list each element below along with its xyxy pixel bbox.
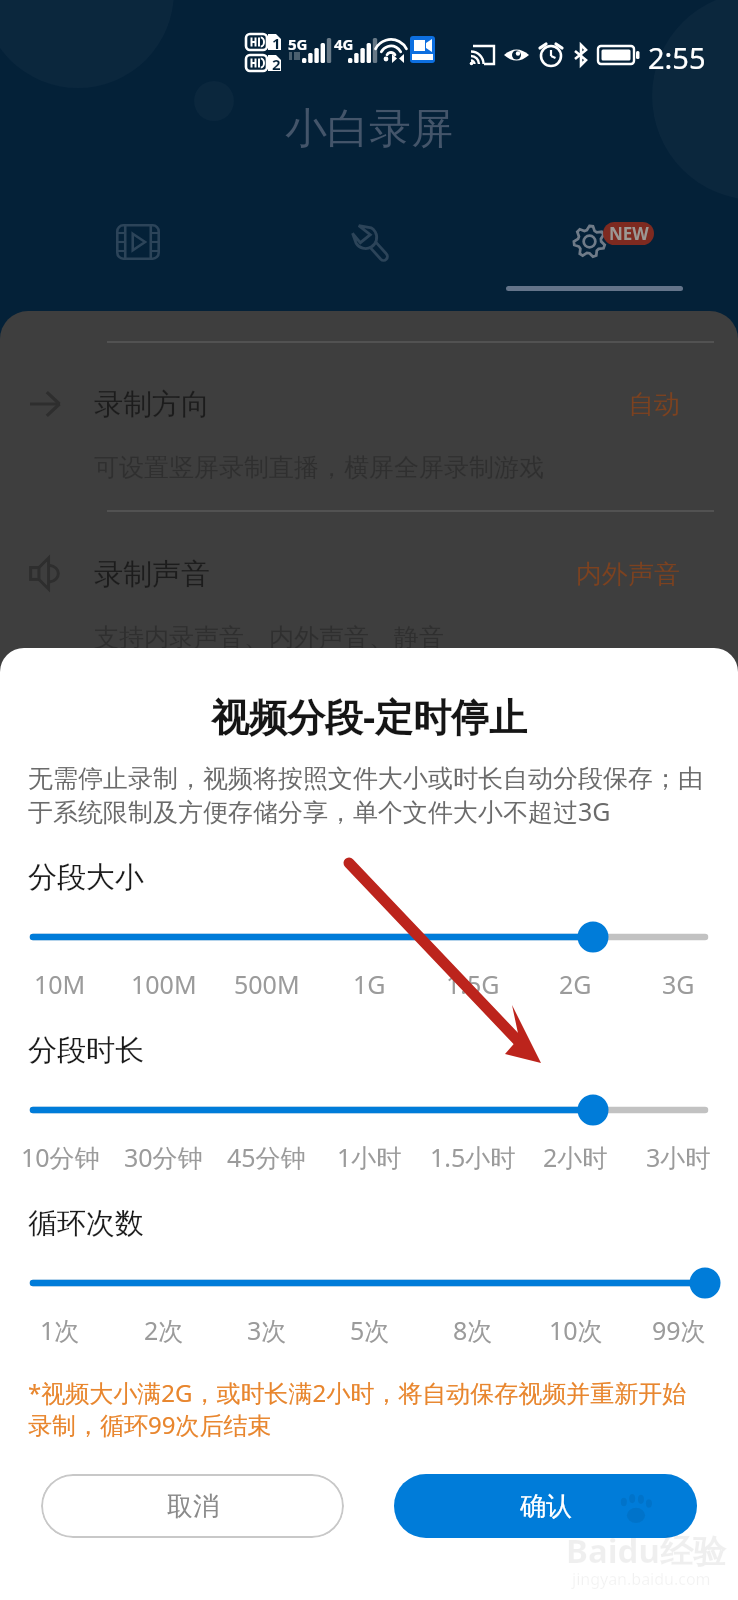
staticText: 3G: [662, 967, 695, 1001]
staticText: 支持内录声音、内外声音、静音: [94, 622, 444, 653]
button[interactable]: Tools: [323, 206, 415, 278]
staticText: Baidu经验: [566, 1528, 726, 1573]
staticText: 1G: [353, 967, 386, 1001]
staticText: 内外声音: [576, 558, 680, 591]
button[interactable]: Settings: [546, 206, 676, 278]
staticText: NEW: [609, 222, 649, 245]
staticText: 8次: [453, 1313, 493, 1347]
staticText: *视频大小满2G，或时长满2小时，将自动保存视频并重新开始录制，循环99次后结束: [28, 1376, 696, 1441]
staticText: 2次: [144, 1313, 184, 1347]
staticText: 自动: [628, 388, 680, 421]
staticText: 循环次数: [28, 1205, 144, 1242]
staticText: 5G: [288, 34, 308, 54]
staticText: 3次: [247, 1313, 287, 1347]
staticText: 可设置竖屏录制直播，横屏全屏录制游戏: [94, 452, 544, 483]
staticText: 无需停止录制，视频将按照文件大小或时长自动分段保存；由于系统限制及方便存储分享，…: [28, 763, 718, 828]
staticText: 3小时: [646, 1140, 711, 1174]
staticText: 2:55: [648, 38, 706, 77]
staticText: 1: [272, 33, 281, 51]
staticText: 500M: [234, 967, 300, 1001]
staticText: 10M: [34, 967, 86, 1001]
staticText: 100M: [131, 967, 197, 1001]
button[interactable]: 取消: [41, 1474, 344, 1538]
staticText: 视频分段-定时停止: [0, 690, 738, 742]
staticText: 2小时: [543, 1140, 608, 1174]
staticText: 1.5小时: [430, 1140, 516, 1174]
staticText: 1小时: [337, 1140, 402, 1174]
staticText: 分段时长: [28, 1032, 144, 1069]
staticText: 5次: [350, 1313, 390, 1347]
button[interactable]: Videos: [92, 206, 184, 278]
staticText: 10分钟: [21, 1140, 100, 1174]
staticText: 2: [272, 54, 281, 72]
staticText: 30分钟: [124, 1140, 203, 1174]
staticText: 1.5G: [446, 967, 500, 1001]
staticText: 99次: [652, 1313, 706, 1347]
staticText: 小白录屏: [0, 103, 738, 156]
button[interactable]: 确认: [394, 1474, 697, 1538]
staticText: 2G: [559, 967, 592, 1001]
staticText: 录制方向: [94, 386, 210, 423]
staticText: 取消: [167, 1490, 219, 1523]
staticText: 1次: [40, 1313, 80, 1347]
staticText: 45分钟: [227, 1140, 306, 1174]
staticText: 4G: [334, 34, 354, 54]
staticText: 确认: [520, 1490, 572, 1523]
staticText: 10次: [549, 1313, 603, 1347]
staticText: jingyan.baidu.com: [572, 1568, 711, 1590]
staticText: 分段大小: [28, 859, 144, 896]
staticText: 录制声音: [94, 556, 210, 593]
